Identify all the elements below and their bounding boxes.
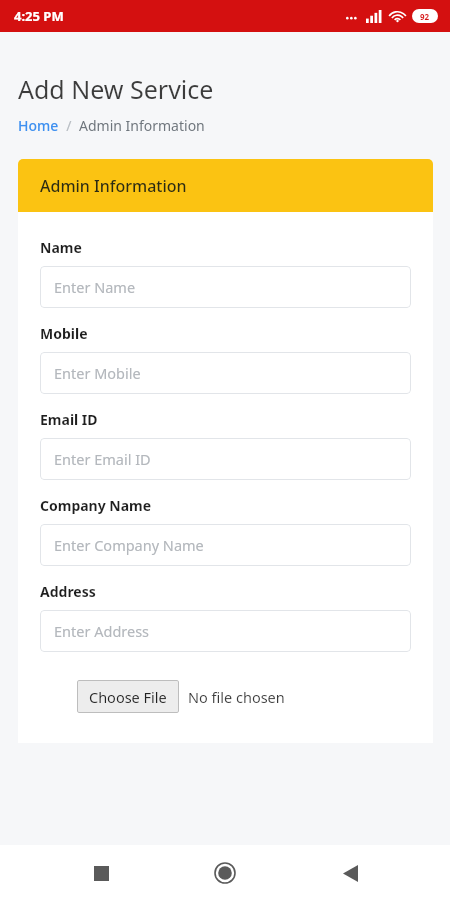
staticText: Admin Information	[79, 116, 205, 135]
staticText: Admin Information	[40, 175, 187, 197]
staticText: Enter Name	[54, 277, 136, 297]
staticText: Choose File	[89, 687, 167, 707]
button[interactable]: Home	[201, 849, 249, 897]
staticText: Email ID	[40, 410, 98, 429]
button[interactable]: Enter Name	[40, 266, 411, 308]
button[interactable]: Choose File	[77, 680, 179, 713]
staticText: Enter Mobile	[54, 363, 141, 383]
button[interactable]: Home	[18, 116, 59, 135]
button[interactable]: Enter Address	[40, 610, 411, 652]
button[interactable]: Enter Email ID	[40, 438, 411, 480]
staticText: Enter Company Name	[54, 535, 204, 555]
staticText: Add New Service	[18, 72, 214, 106]
button[interactable]: Recent apps	[77, 849, 125, 897]
staticText: Name	[40, 238, 82, 257]
staticText: Enter Address	[54, 621, 150, 641]
staticText: Company Name	[40, 496, 152, 515]
staticText: 92	[420, 11, 430, 22]
staticText: 4:25 PM	[14, 7, 64, 25]
button[interactable]: Enter Company Name	[40, 524, 411, 566]
button[interactable]: Back	[326, 849, 374, 897]
staticText: /	[59, 116, 79, 135]
staticText: Enter Email ID	[54, 449, 151, 469]
staticText: Mobile	[40, 324, 88, 343]
staticText: No file chosen	[188, 687, 285, 707]
button[interactable]: Enter Mobile	[40, 352, 411, 394]
staticText: Address	[40, 582, 96, 601]
